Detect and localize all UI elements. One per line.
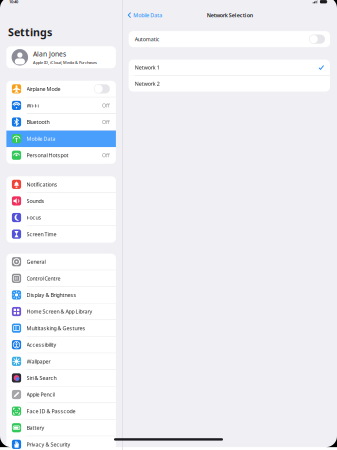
staticText: Apple ID, iCloud, Media & Purchases [33,60,97,65]
staticText: Bluetooth [26,118,49,126]
staticText: General [26,258,45,265]
button[interactable]: Privacy & Security [6,436,116,450]
staticText: Multitasking & Gestures [26,325,85,332]
staticText: Privacy & Security [26,441,70,448]
button[interactable]: General [6,254,116,270]
staticText: Mobile Data [26,135,55,142]
button[interactable]: Display & Brightness [6,287,116,303]
button[interactable]: Control Centre [6,270,116,287]
staticText: Control Centre [26,275,60,282]
staticText: Mobile Data [133,12,162,19]
staticText: Alan Jones [33,49,66,58]
button[interactable]: Wallpaper [6,353,116,370]
button[interactable]: Airplane Mode [6,81,116,97]
button[interactable]: Battery [6,420,116,436]
staticText: Accessibility [26,341,56,348]
staticText: Settings [8,25,52,39]
button[interactable]: Sounds [6,193,116,209]
staticText: Network 2 [135,80,160,87]
staticText: Off [102,118,110,126]
button[interactable]: Notifications [6,176,116,193]
staticText: Notifications [26,181,57,188]
button[interactable]: Apple Pencil [6,386,116,403]
staticText: Network Selection [207,12,253,19]
staticText: Airplane Mode [26,85,60,92]
button[interactable]: Screen Time [6,226,116,243]
staticText: 10:40 [9,0,18,4]
button[interactable]: Accessibility [6,337,116,353]
button[interactable]: Mobile Data [123,9,162,22]
staticText: Display & Brightness [26,291,76,298]
button[interactable]: Network 1 [129,60,330,75]
button[interactable]: Mobile Data [6,131,116,147]
staticText: Face ID & Passcode [26,408,75,415]
staticText: Automatic [135,36,160,43]
staticText: Wi-Fi [26,102,38,109]
staticText: Off [102,102,110,109]
button[interactable]: Wi-Fi [6,97,116,114]
staticText: Focus [26,214,41,221]
staticText: Apple Pencil [26,391,54,398]
button[interactable]: Bluetooth [6,114,116,131]
button[interactable]: Siri & Search [6,370,116,386]
button[interactable]: Focus [6,209,116,226]
button[interactable]: Home Screen & App Library [6,303,116,320]
staticText: Wallpaper [26,358,50,365]
button[interactable]: Alan Jones [6,46,116,68]
button[interactable]: Personal Hotspot [6,147,116,164]
staticText: Screen Time [26,231,56,238]
button[interactable]: Face ID & Passcode [6,403,116,420]
staticText: Off [102,152,110,159]
staticText: Network 1 [135,64,160,71]
staticText: Home Screen & App Library [26,308,92,315]
staticText: Battery [26,424,44,431]
button[interactable]: Network 2 [129,76,330,91]
button[interactable]: Multitasking & Gestures [6,320,116,337]
staticText: Siri & Search [26,374,56,381]
staticText: Sounds [26,197,44,204]
staticText: Personal Hotspot [26,152,68,159]
